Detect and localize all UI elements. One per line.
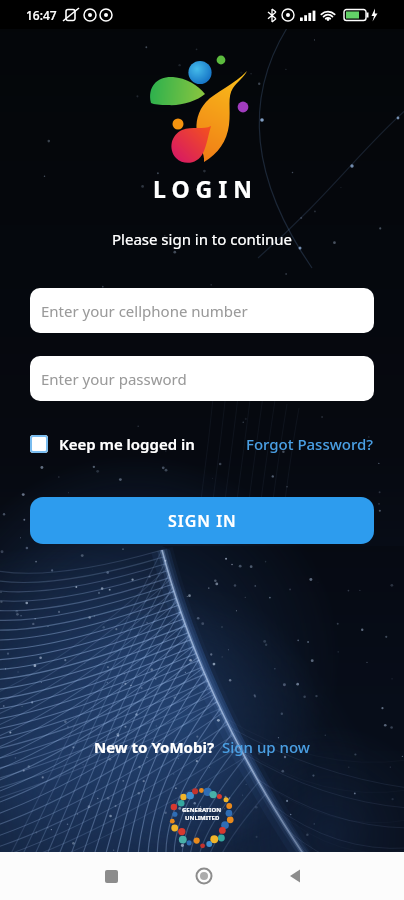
button[interactable]: Enter your password <box>30 356 374 401</box>
staticText: UNLIMITED <box>185 814 220 822</box>
staticText: Forgot Password? <box>246 434 374 454</box>
button[interactable]: Forgot Password? <box>246 434 374 454</box>
staticText: LOGIN <box>153 173 258 204</box>
button[interactable]: Enter your cellphone number <box>30 288 374 333</box>
button[interactable]: Sign up now <box>222 737 310 757</box>
staticText: Enter your password <box>41 369 187 389</box>
staticText: Sign up now <box>222 737 310 757</box>
staticText: Enter your cellphone number <box>41 301 248 321</box>
staticText: GENERATION <box>182 806 222 814</box>
button[interactable] <box>282 863 308 889</box>
staticText: Keep me logged in <box>59 434 195 454</box>
button[interactable] <box>191 863 217 889</box>
staticText: Please sign in to continue <box>112 229 293 249</box>
button[interactable]: SIGN IN <box>30 497 374 544</box>
button[interactable]: Keep me logged in <box>30 434 195 454</box>
staticText: SIGN IN <box>168 510 237 532</box>
staticText: 16:47 <box>26 7 57 23</box>
button[interactable] <box>98 863 124 889</box>
staticText: New to YoMobi? <box>94 737 215 757</box>
